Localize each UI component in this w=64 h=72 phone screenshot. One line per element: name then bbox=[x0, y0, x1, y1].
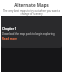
staticText: Chapter 1 bbox=[2, 27, 17, 31]
staticText: The very best maps to try out when you w… bbox=[1, 9, 62, 15]
button[interactable]: Chapter 1 bbox=[1, 16, 62, 48]
staticText: Alternate Maps bbox=[14, 2, 49, 8]
staticText: Read more bbox=[2, 37, 18, 41]
staticText: Download the map pack to begin exploring bbox=[2, 32, 55, 36]
